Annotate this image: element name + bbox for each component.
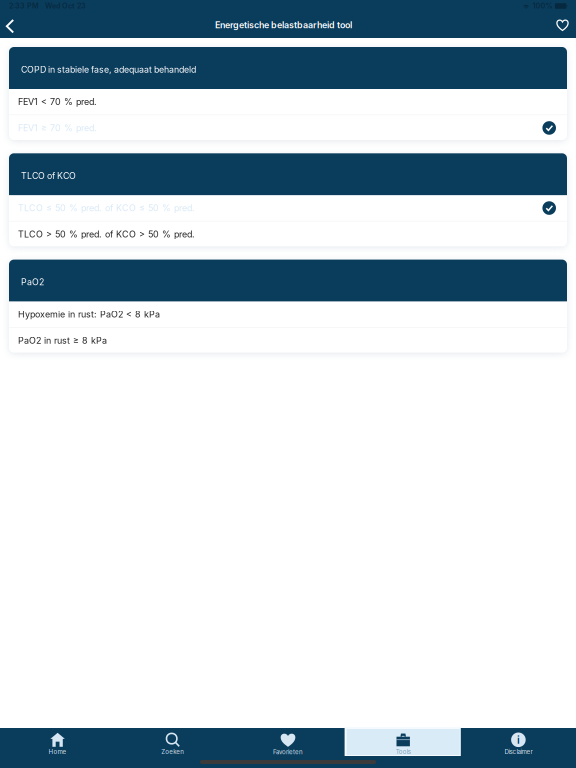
staticText: Disclaimer [504,748,532,755]
staticText: PaO2 [21,277,44,287]
button[interactable]: Hypoxemie in rust: PaO2 < 8 kPa [9,302,567,327]
staticText: Home [49,748,67,755]
button[interactable]: TLCO > 50 % pred. of KCO > 50 % pred. [9,221,567,247]
staticText: COPD in stabiele fase, adequaat behandel… [21,64,196,75]
staticText: Favorieten [273,748,303,756]
button[interactable]: i [461,728,576,756]
staticText: FEV1 < 70 % pred. [18,96,97,107]
staticText: Energetische belastbaarheid tool [215,20,352,30]
staticText: FEV1 ≥ 70 % pred. [18,122,97,133]
staticText: TLCO of KCO [21,170,76,181]
button[interactable]: FEV1 ≥ 70 % pred. [9,115,567,141]
button[interactable]: TLCO ≤ 50 % pred. of KCO ≤ 50 % pred. [9,195,567,221]
button[interactable]: Favorieten [230,728,346,756]
staticText: 2:33 PM [9,2,39,10]
staticText: i [517,733,520,746]
button[interactable]: PaO2 in rust ≥ 8 kPa [9,328,567,353]
staticText: TLCO > 50 % pred. of KCO > 50 % pred. [18,229,195,240]
button[interactable]: Favorite [550,12,575,38]
button[interactable]: Tools [346,728,461,756]
staticText: Wed Oct 23 [45,2,86,10]
button[interactable]: FEV1 < 70 % pred. [9,89,567,114]
staticText: Tools [396,748,411,755]
staticText: Zoeken [161,748,184,755]
staticText: 100% [532,2,552,10]
button[interactable]: Zoeken [115,728,230,756]
button[interactable]: Home [0,728,115,756]
staticText: TLCO ≤ 50 % pred. of KCO ≤ 50 % pred. [18,203,195,213]
button[interactable]: Back [1,12,18,38]
staticText: Hypoxemie in rust: PaO2 < 8 kPa [18,309,160,320]
staticText: PaO2 in rust ≥ 8 kPa [18,335,107,346]
